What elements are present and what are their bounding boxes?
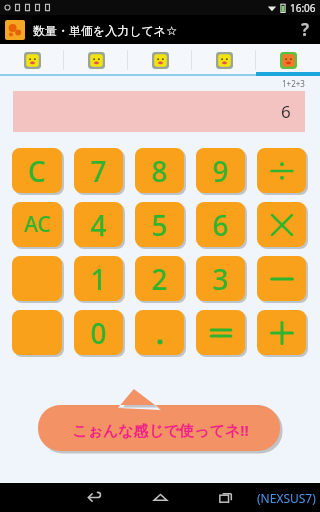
button[interactable] bbox=[257, 148, 306, 193]
button[interactable]: Home bbox=[140, 483, 180, 512]
button[interactable]: Tab 3 bbox=[128, 44, 192, 76]
button[interactable]: 1 bbox=[74, 256, 123, 301]
button[interactable]: Tab 1 bbox=[0, 44, 64, 76]
staticText: (NEXSUS7) bbox=[257, 490, 316, 506]
staticText: 6 bbox=[212, 206, 229, 244]
button[interactable] bbox=[257, 256, 306, 301]
staticText: 2 bbox=[151, 260, 168, 298]
button[interactable]: 8 bbox=[135, 148, 184, 193]
button[interactable]: 6 bbox=[196, 202, 245, 247]
button[interactable]: 7 bbox=[74, 148, 123, 193]
staticText: C bbox=[28, 152, 46, 190]
button[interactable] bbox=[135, 310, 184, 355]
staticText: AC bbox=[24, 210, 51, 239]
button[interactable]: Back bbox=[74, 483, 114, 512]
staticText: 3 bbox=[212, 260, 229, 298]
staticText: 16:06 bbox=[290, 1, 316, 15]
button[interactable]: C bbox=[12, 148, 62, 193]
button[interactable] bbox=[257, 202, 306, 247]
staticText: 8 bbox=[151, 152, 168, 190]
button[interactable]: Recent apps bbox=[206, 483, 246, 512]
button[interactable]: 9 bbox=[196, 148, 245, 193]
button[interactable]: 0 bbox=[74, 310, 123, 355]
button[interactable]: Blank key bbox=[12, 310, 62, 355]
button[interactable]: Help bbox=[290, 15, 320, 44]
staticText: 数量・単価を入力してネ☆ bbox=[33, 23, 177, 38]
button[interactable]: 5 bbox=[135, 202, 184, 247]
staticText: 5 bbox=[151, 206, 168, 244]
button[interactable]: AC bbox=[12, 202, 62, 247]
button[interactable] bbox=[257, 310, 306, 355]
staticText: 9 bbox=[212, 152, 229, 190]
staticText: 4 bbox=[90, 206, 107, 244]
button[interactable]: 2 bbox=[135, 256, 184, 301]
button[interactable]: 6 bbox=[13, 91, 305, 132]
button[interactable]: Tab 5 bbox=[256, 44, 320, 76]
button[interactable]: Tab 4 bbox=[192, 44, 256, 76]
staticText: 7 bbox=[90, 152, 107, 190]
button[interactable]: Blank key bbox=[12, 256, 62, 301]
staticText: ? bbox=[301, 18, 310, 41]
staticText: 1+2+3 bbox=[282, 78, 305, 89]
staticText: こぉんな感じで使ってネ!! bbox=[72, 420, 249, 440]
staticText: 0 bbox=[90, 314, 107, 352]
button[interactable] bbox=[196, 310, 245, 355]
staticText: 6 bbox=[281, 100, 291, 123]
button[interactable]: Tab 2 bbox=[64, 44, 128, 76]
staticText: 1 bbox=[90, 260, 107, 298]
button[interactable]: 4 bbox=[74, 202, 123, 247]
button[interactable]: 3 bbox=[196, 256, 245, 301]
